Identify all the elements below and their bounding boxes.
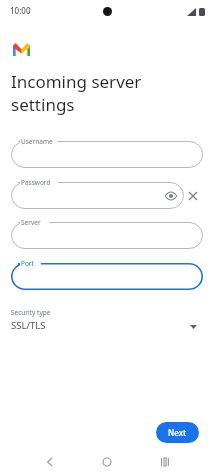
button[interactable]: Home bbox=[100, 455, 114, 469]
staticText: Incoming server bbox=[11, 70, 142, 93]
staticText: Next bbox=[168, 427, 187, 438]
staticText: Server bbox=[21, 218, 41, 227]
button[interactable]: Username bbox=[11, 141, 203, 168]
button[interactable]: Security type bbox=[0, 303, 214, 335]
button[interactable]: Show password bbox=[164, 189, 178, 203]
button[interactable]: Clear password bbox=[185, 188, 201, 204]
button[interactable]: Server bbox=[11, 222, 203, 249]
staticText: Port bbox=[21, 259, 34, 268]
staticText: settings bbox=[11, 93, 75, 116]
button[interactable]: Recent apps bbox=[158, 455, 172, 469]
button[interactable]: Port bbox=[11, 263, 203, 290]
button[interactable]: Next bbox=[156, 422, 199, 443]
staticText: Security type bbox=[11, 308, 51, 317]
staticText: Password bbox=[21, 178, 51, 187]
button[interactable]: Back bbox=[43, 455, 57, 469]
button[interactable]: Password bbox=[11, 182, 184, 209]
staticText: SSL/TLS bbox=[11, 319, 46, 332]
staticText: Username bbox=[21, 137, 53, 146]
staticText: 10:00 bbox=[10, 5, 31, 16]
